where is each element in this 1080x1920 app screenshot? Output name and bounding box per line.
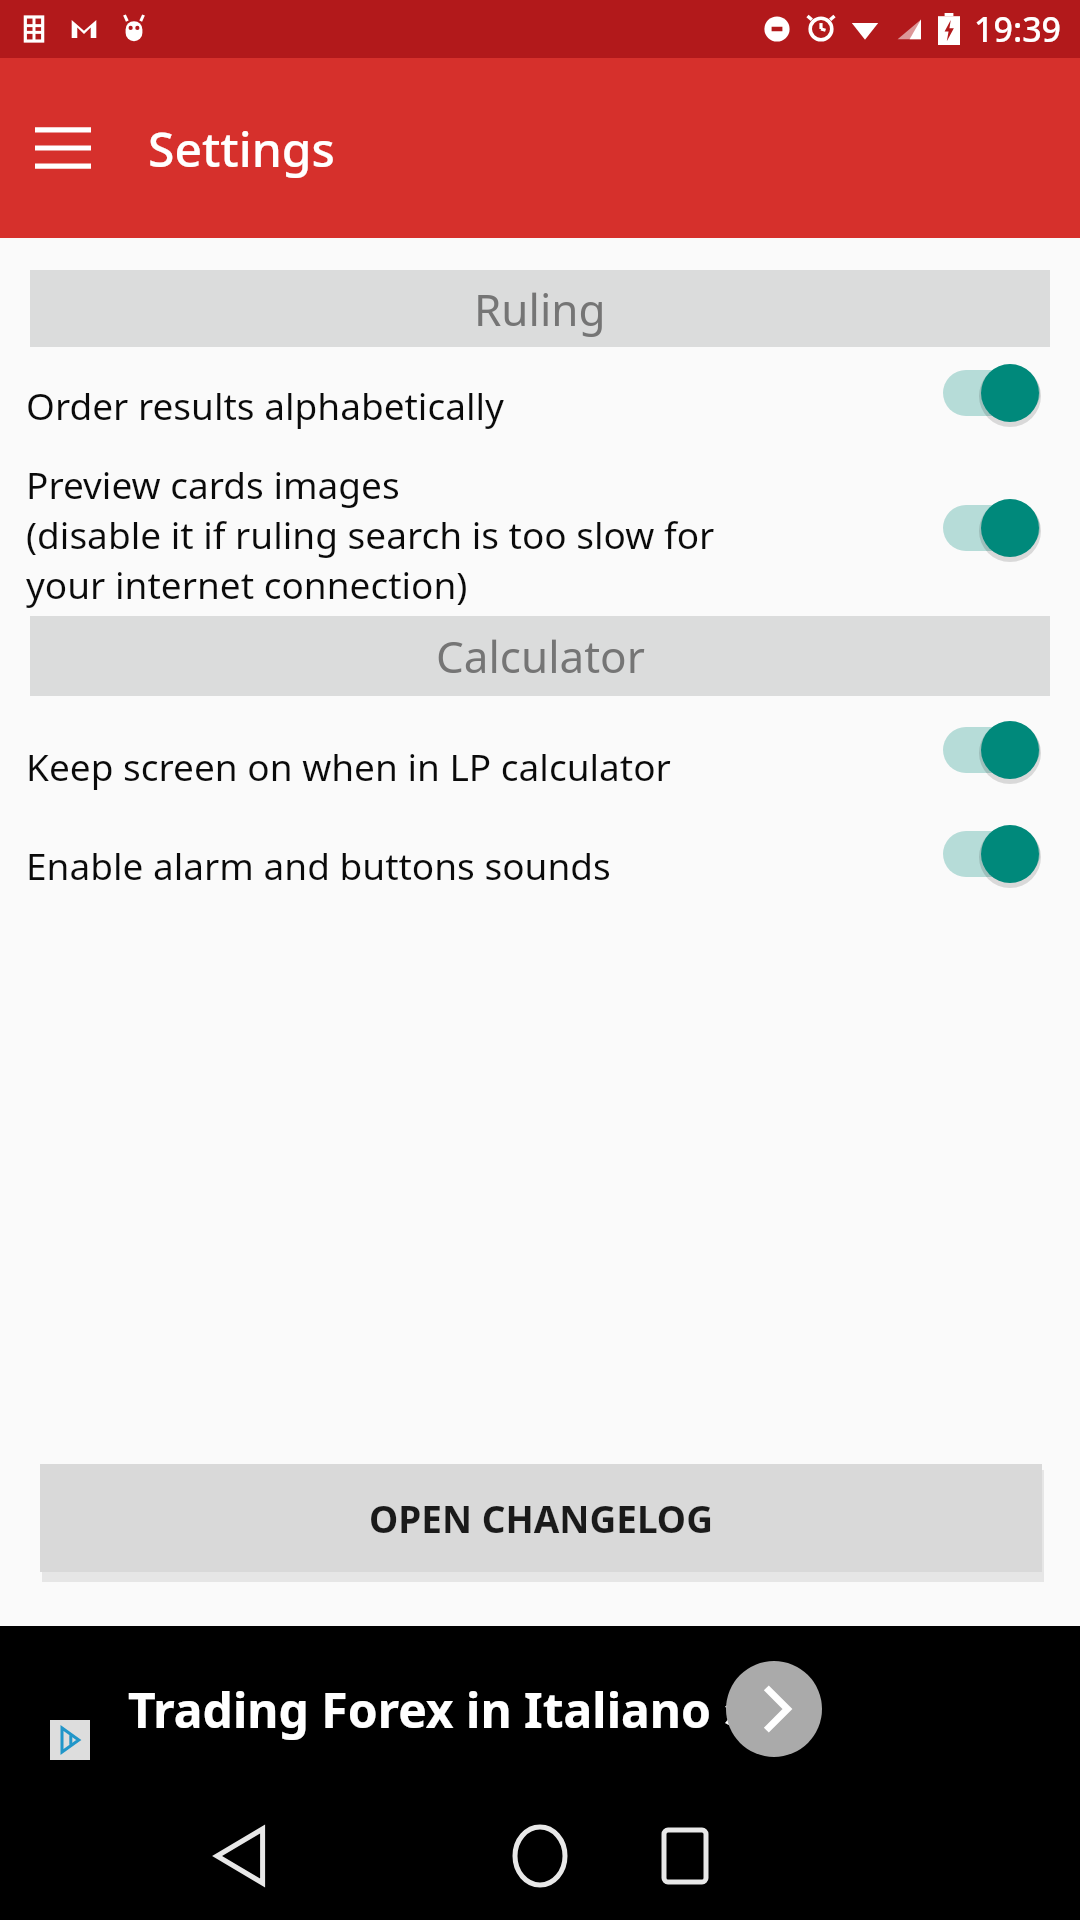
button[interactable]: Recent apps bbox=[630, 1801, 740, 1911]
button[interactable]: Preview cards images bbox=[0, 439, 1080, 616]
staticText: Calculator bbox=[436, 626, 645, 686]
button[interactable]: Home bbox=[485, 1801, 595, 1911]
staticText: Trading Forex in Italiano » bbox=[128, 1677, 753, 1742]
staticText: Settings bbox=[148, 116, 335, 181]
staticText: Keep screen on when in LP calculator bbox=[26, 741, 671, 791]
staticText: OPEN CHANGELOG bbox=[369, 1493, 713, 1543]
button[interactable]: Open ad bbox=[726, 1661, 822, 1757]
button[interactable]: Enable alarm and buttons sounds bbox=[0, 804, 1080, 904]
button[interactable]: Trading Forex in Italiano » bbox=[0, 1626, 1080, 1792]
button[interactable]: OPEN CHANGELOG bbox=[40, 1464, 1042, 1572]
staticText: Order results alphabetically bbox=[26, 380, 504, 430]
staticText: 19:39 bbox=[974, 6, 1062, 52]
staticText: Ruling bbox=[474, 279, 606, 339]
staticText: Enable alarm and buttons sounds bbox=[26, 840, 611, 890]
button[interactable]: Back bbox=[186, 1801, 296, 1911]
button[interactable]: Open navigation menu bbox=[30, 115, 96, 181]
button[interactable]: Order results alphabetically bbox=[0, 347, 1080, 439]
button[interactable]: Keep screen on when in LP calculator bbox=[0, 696, 1080, 804]
staticText: (disable it if ruling search is too slow… bbox=[26, 509, 715, 559]
staticText: Preview cards images bbox=[26, 459, 400, 509]
staticText: your internet connection) bbox=[26, 559, 468, 609]
